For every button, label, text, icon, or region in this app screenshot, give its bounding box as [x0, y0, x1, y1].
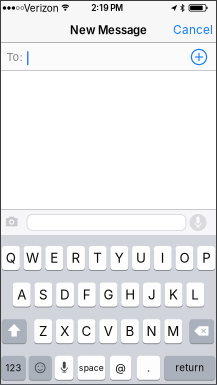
button[interactable]: K [165, 282, 183, 307]
staticText: J [148, 286, 156, 303]
staticText: return [175, 362, 204, 374]
staticText: 2:19 PM [91, 3, 123, 13]
button[interactable]: Z [34, 319, 52, 344]
button[interactable]: space [77, 355, 105, 380]
button[interactable]: Cancel [171, 15, 215, 45]
staticText: R [71, 250, 80, 266]
staticText: M [167, 323, 179, 339]
staticText: A [17, 286, 26, 303]
staticText: P [202, 250, 210, 266]
staticText: New Message [70, 23, 147, 37]
button[interactable]: Delete [190, 319, 214, 344]
button[interactable]: Record Audio [189, 213, 207, 231]
button[interactable]: return [164, 355, 215, 380]
button[interactable]: I [154, 245, 172, 270]
button[interactable]: N [143, 319, 161, 344]
button[interactable]: 123 [1, 355, 25, 380]
staticText: Cancel [173, 23, 213, 37]
staticText: U [136, 250, 146, 266]
staticText: G [103, 286, 113, 303]
staticText: To: [6, 50, 22, 64]
button[interactable]: T [89, 245, 107, 270]
button[interactable]: Y [110, 245, 128, 270]
button[interactable]: Q [2, 245, 20, 270]
button[interactable]: V [99, 319, 117, 344]
button[interactable]: H [121, 282, 139, 307]
button[interactable]: S [34, 282, 52, 307]
staticText: Z [39, 323, 47, 339]
staticText: B [125, 323, 134, 339]
staticText: L [191, 286, 199, 303]
button[interactable]: L [186, 282, 204, 307]
staticText: Verizon [24, 2, 59, 14]
staticText: O [179, 250, 189, 266]
staticText: 123 [5, 362, 21, 373]
button[interactable]: X [56, 319, 74, 344]
staticText: S [39, 286, 48, 303]
staticText: F [83, 286, 91, 303]
button[interactable]: R [67, 245, 85, 270]
staticText: K [169, 286, 178, 303]
button[interactable]: W [23, 245, 41, 270]
button[interactable]: E [45, 245, 63, 270]
staticText: X [60, 323, 69, 339]
staticText: N [147, 323, 157, 339]
button[interactable]: F [78, 282, 96, 307]
staticText: D [60, 286, 70, 303]
staticText: E [50, 250, 58, 266]
button[interactable]: Dictate [55, 355, 73, 380]
button[interactable]: O [175, 245, 193, 270]
staticText: I [161, 250, 165, 266]
staticText: Q [6, 250, 16, 266]
staticText: W [26, 250, 39, 266]
staticText: . [147, 361, 150, 374]
button[interactable]: G [99, 282, 117, 307]
button[interactable]: @ [110, 355, 131, 380]
button[interactable]: Add Contact [190, 48, 208, 66]
button[interactable]: Shift [2, 319, 26, 344]
button[interactable]: J [143, 282, 161, 307]
button[interactable]: Emoji [29, 355, 51, 380]
staticText: Y [115, 250, 124, 266]
staticText: T [93, 250, 102, 266]
button[interactable]: D [56, 282, 74, 307]
button[interactable]: Camera [3, 214, 21, 230]
staticText: H [125, 286, 135, 303]
staticText: C [81, 323, 91, 339]
staticText: space [79, 363, 104, 373]
button[interactable]: U [132, 245, 150, 270]
button[interactable]: . [137, 355, 160, 380]
button[interactable]: B [121, 319, 139, 344]
button[interactable]: M [164, 319, 182, 344]
staticText: @ [115, 361, 126, 374]
staticText: V [104, 323, 113, 339]
button[interactable]: A [13, 282, 31, 307]
button[interactable]: C [77, 319, 95, 344]
button[interactable]: P [197, 245, 215, 270]
